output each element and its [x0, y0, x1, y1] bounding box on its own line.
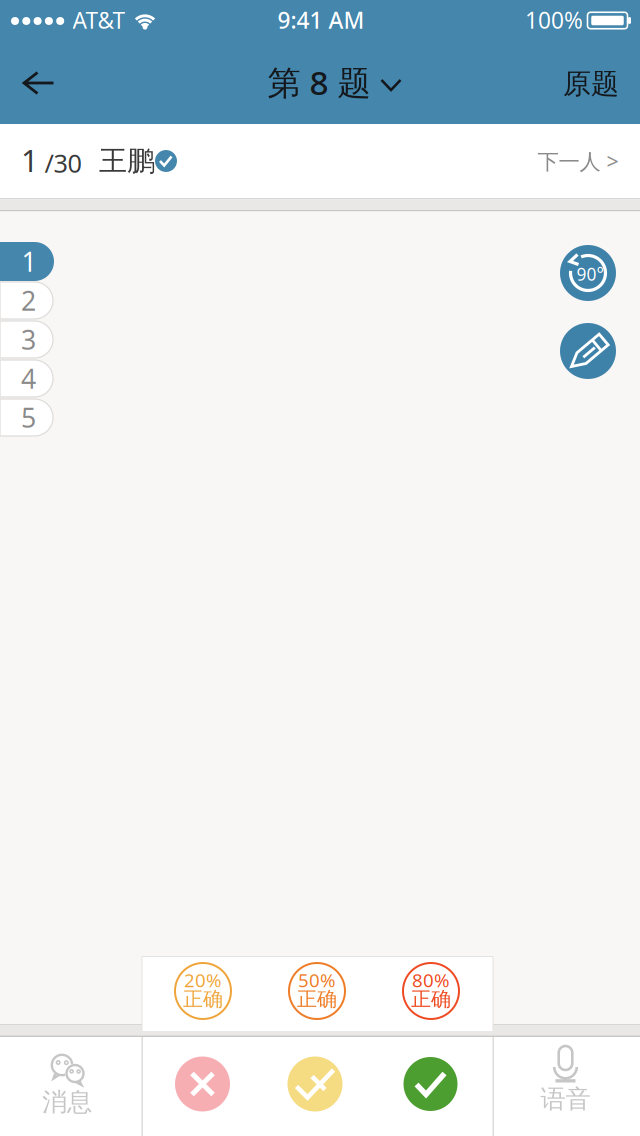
- button[interactable]: Back: [9, 58, 68, 108]
- button[interactable]: 3: [0, 321, 53, 358]
- staticText: 下一人 >: [537, 147, 618, 175]
- staticText: 消息: [42, 1086, 92, 1117]
- button[interactable]: Half correct: [287, 1056, 342, 1111]
- button[interactable]: 语音: [500, 1037, 639, 1129]
- button[interactable]: Rotate 90°: [560, 245, 616, 301]
- staticText: 王鹏: [99, 144, 155, 178]
- staticText: 正确: [411, 987, 451, 1011]
- staticText: AT&T: [72, 5, 125, 35]
- button[interactable]: 下一人 >: [527, 137, 628, 185]
- staticText: 5: [21, 400, 36, 435]
- staticText: 3: [21, 322, 36, 357]
- button[interactable]: 第 8 题: [267, 60, 400, 104]
- button[interactable]: 原题: [555, 59, 627, 109]
- button[interactable]: 50%: [289, 963, 345, 1019]
- staticText: 9:41 AM: [277, 5, 364, 35]
- button[interactable]: 4: [0, 360, 53, 397]
- staticText: /30: [44, 146, 81, 180]
- staticText: 第 8 题: [267, 60, 370, 104]
- button[interactable]: 1: [0, 242, 54, 281]
- staticText: 20%: [184, 968, 222, 992]
- button[interactable]: 80%: [403, 963, 459, 1019]
- button[interactable]: 2: [0, 282, 53, 319]
- staticText: 1: [21, 244, 36, 279]
- button[interactable]: Correct: [403, 1057, 457, 1111]
- staticText: 2: [21, 283, 36, 318]
- staticText: 1: [21, 140, 39, 180]
- staticText: 语音: [540, 1083, 590, 1114]
- staticText: 正确: [297, 987, 337, 1011]
- staticText: 90°: [576, 262, 603, 285]
- button[interactable]: Wrong: [175, 1056, 230, 1111]
- button[interactable]: Annotate: [560, 323, 616, 379]
- staticText: 50%: [298, 968, 336, 992]
- staticText: 100%: [525, 5, 583, 35]
- staticText: 80%: [412, 968, 450, 992]
- staticText: 原题: [563, 67, 619, 101]
- staticText: 正确: [183, 987, 223, 1011]
- button[interactable]: 消息: [0, 1037, 132, 1129]
- staticText: 4: [21, 361, 36, 396]
- button[interactable]: 20%: [175, 963, 231, 1019]
- button[interactable]: 5: [0, 399, 53, 436]
